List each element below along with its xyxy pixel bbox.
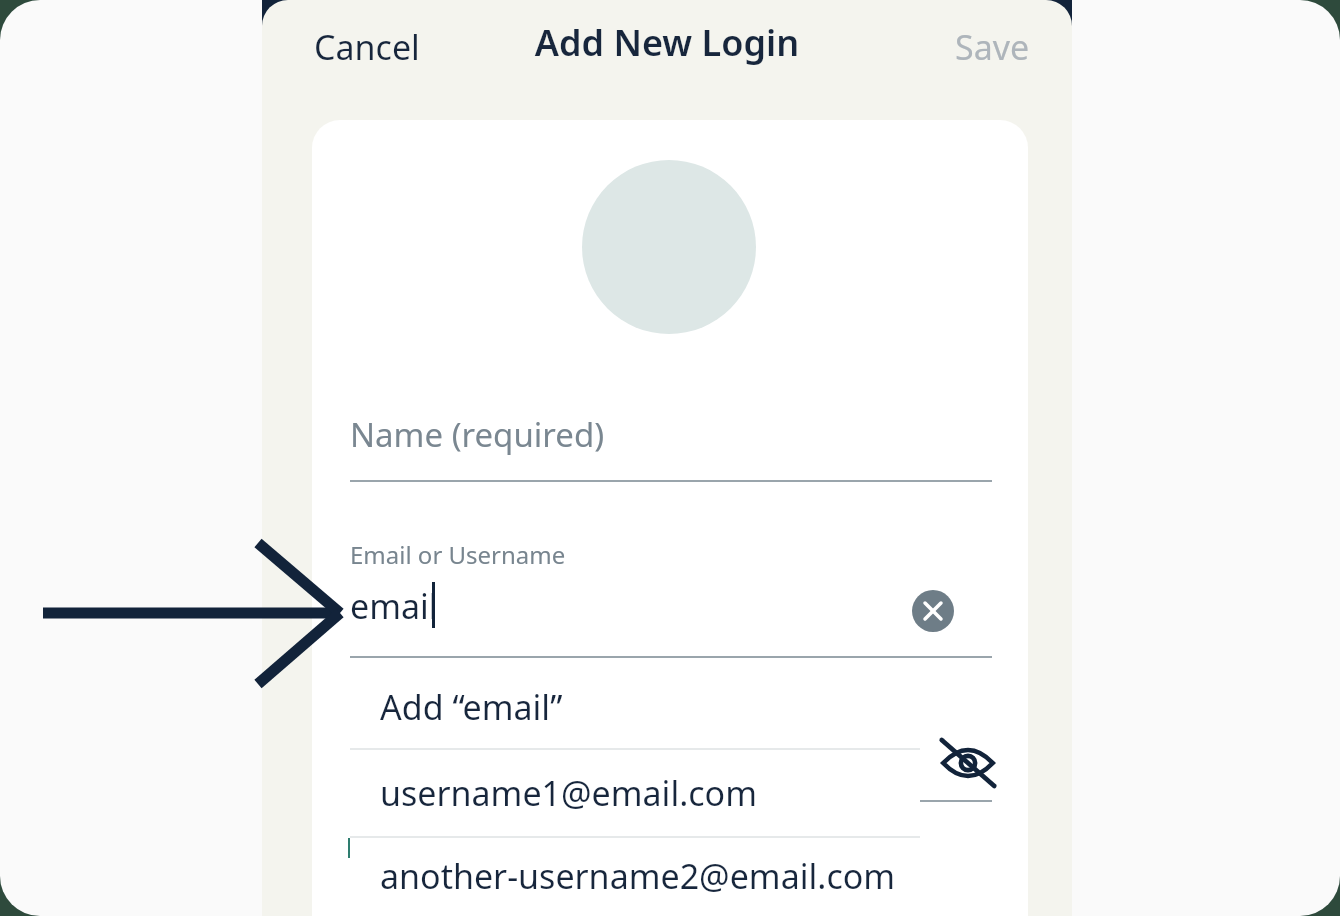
staticText: Save [955, 24, 1030, 70]
button[interactable]: Clear text [912, 590, 954, 632]
staticText: email [350, 583, 438, 629]
button[interactable]: another-username2@email.com [350, 838, 920, 913]
button[interactable]: Name (required) [350, 392, 992, 482]
staticText: Add New Login [262, 18, 1072, 67]
button[interactable]: Choose icon [582, 160, 756, 334]
button[interactable]: Add “email” [350, 665, 920, 748]
staticText: Name (required) [350, 412, 605, 457]
button[interactable]: Save [951, 20, 1034, 74]
staticText: Cancel [314, 24, 420, 70]
button[interactable]: Email or Username [350, 538, 992, 658]
staticText: Add “email” [380, 684, 563, 730]
button[interactable] [350, 718, 992, 802]
button[interactable]: username1@email.com [350, 750, 920, 836]
button[interactable]: Show password [937, 732, 999, 794]
staticText: Email or Username [350, 538, 566, 571]
staticText: another-username2@email.com [380, 853, 896, 899]
staticText: username1@email.com [380, 770, 757, 816]
button[interactable]: Cancel [310, 20, 424, 74]
